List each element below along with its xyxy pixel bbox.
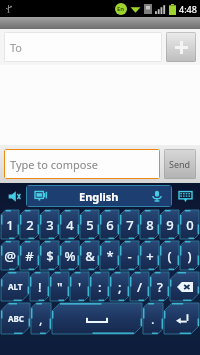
button[interactable]: 7	[120, 210, 139, 239]
button[interactable]: Space	[52, 303, 142, 334]
button[interactable]: 8	[140, 210, 159, 239]
button[interactable]: Enter	[164, 303, 199, 334]
button[interactable]: '	[70, 272, 89, 301]
staticText: En	[117, 5, 125, 13]
staticText: 1	[6, 216, 14, 234]
button[interactable]: Backspace	[170, 272, 199, 301]
button[interactable]: 5	[80, 210, 99, 239]
staticText: ,	[39, 310, 43, 328]
staticText: ALT	[8, 281, 23, 292]
button[interactable]: %	[60, 241, 79, 270]
staticText: 7	[126, 216, 134, 234]
staticText: ABC	[8, 313, 24, 324]
staticText: +	[146, 247, 154, 265]
button[interactable]: @	[1, 241, 19, 270]
button[interactable]: "	[50, 272, 69, 301]
staticText: &	[85, 247, 95, 265]
button[interactable]: +	[140, 241, 159, 270]
button[interactable]: /	[130, 272, 149, 301]
button[interactable]: #	[20, 241, 39, 270]
button[interactable]: Keyboard settings	[172, 185, 198, 207]
button[interactable]: 9	[160, 210, 179, 239]
staticText: To	[10, 40, 23, 55]
button[interactable]: Sound	[2, 185, 26, 207]
button[interactable]: To	[4, 32, 162, 62]
staticText: #	[25, 247, 34, 265]
button[interactable]: 2	[20, 210, 39, 239]
staticText: :	[98, 278, 102, 296]
button[interactable]: Add recipient	[166, 32, 196, 62]
button[interactable]: -	[120, 241, 139, 270]
button[interactable]: 3	[40, 210, 59, 239]
staticText: 0	[186, 216, 194, 234]
button[interactable]: *	[100, 241, 119, 270]
staticText: ?	[157, 278, 163, 296]
button[interactable]: English	[26, 185, 172, 207]
button[interactable]: 1	[1, 210, 19, 239]
staticText: -	[127, 247, 132, 265]
button[interactable]: $	[40, 241, 59, 270]
staticText: "	[57, 278, 63, 296]
staticText: @	[4, 247, 16, 265]
button[interactable]: ABC	[1, 303, 30, 334]
button[interactable]: ALT	[1, 272, 29, 301]
button[interactable]: :	[90, 272, 109, 301]
button[interactable]: ,	[31, 303, 51, 334]
staticText: %	[64, 247, 76, 265]
staticText: 4:48	[179, 3, 197, 15]
staticText: /	[137, 278, 143, 296]
staticText: $	[46, 247, 54, 265]
button[interactable]: 4	[60, 210, 79, 239]
button[interactable]: .	[143, 303, 163, 334]
button[interactable]: ;	[110, 272, 129, 301]
button[interactable]: (	[160, 241, 179, 270]
staticText: 4	[66, 216, 74, 234]
staticText: 3	[46, 216, 54, 234]
staticText: 2	[26, 216, 34, 234]
staticText: 9	[166, 216, 174, 234]
button[interactable]: 6	[100, 210, 119, 239]
button[interactable]: )	[180, 241, 199, 270]
button[interactable]: ?	[150, 272, 169, 301]
button[interactable]: Send	[164, 149, 196, 179]
staticText: 8	[146, 216, 154, 234]
staticText: .	[151, 310, 155, 328]
staticText: Send	[169, 158, 191, 170]
staticText: ;	[118, 278, 122, 296]
button[interactable]: Type to compose	[4, 149, 160, 179]
staticText: !	[38, 278, 42, 296]
staticText: English	[79, 189, 119, 204]
staticText: Type to compose	[10, 157, 98, 172]
staticText: *	[106, 247, 114, 265]
button[interactable]: !	[30, 272, 49, 301]
button[interactable]: 0	[180, 210, 199, 239]
button[interactable]: &	[80, 241, 99, 270]
staticText: )	[187, 247, 192, 265]
staticText: (	[167, 247, 172, 265]
staticText: 5	[86, 216, 94, 234]
staticText: 6	[106, 216, 114, 234]
staticText: '	[78, 278, 82, 296]
